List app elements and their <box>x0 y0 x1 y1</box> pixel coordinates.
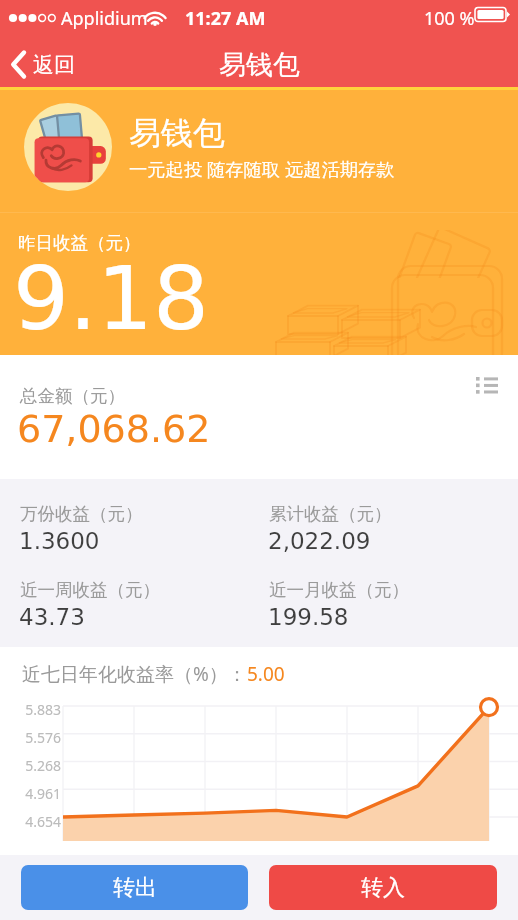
staticText: 4.961 <box>0 784 61 803</box>
staticText: 67,068.62 <box>17 407 211 451</box>
staticText: 总金额（元） <box>20 385 125 407</box>
staticText: 4.654 <box>0 812 61 831</box>
staticText: 近一周收益（元） <box>20 579 160 601</box>
staticText: 昨日收益（元） <box>18 232 141 254</box>
staticText: 万份收益（元） <box>20 503 143 525</box>
staticText: 43.73 <box>19 604 85 631</box>
staticText: 2,022.09 <box>268 528 371 555</box>
staticText: 100 % <box>424 6 475 31</box>
staticText: 累计收益（元） <box>269 503 392 525</box>
staticText: 1.3600 <box>19 528 100 555</box>
button[interactable]: 返回 <box>0 47 89 82</box>
button[interactable]: 交易记录 <box>468 369 506 402</box>
staticText: 5.00 <box>247 661 285 687</box>
staticText: Applidium <box>61 6 148 31</box>
staticText: 返回 <box>33 52 75 78</box>
staticText: 一元起投 随存随取 远超活期存款 <box>129 156 395 181</box>
staticText: 11:27 AM <box>185 6 266 31</box>
staticText: 199.58 <box>268 604 349 631</box>
staticText: 转出 <box>113 874 157 902</box>
staticText: 易钱包 <box>129 113 225 153</box>
button[interactable]: 转入 <box>269 865 497 910</box>
staticText: 9.18 <box>13 247 209 349</box>
staticText: 近七日年化收益率（%）： <box>22 661 247 687</box>
staticText: 近一月收益（元） <box>269 579 409 601</box>
staticText: 易钱包 <box>219 48 300 82</box>
staticText: 5.883 <box>0 700 61 719</box>
staticText: 5.268 <box>0 756 61 775</box>
staticText: 转入 <box>361 874 405 902</box>
staticText: 5.576 <box>0 728 61 747</box>
button[interactable]: 转出 <box>21 865 248 910</box>
